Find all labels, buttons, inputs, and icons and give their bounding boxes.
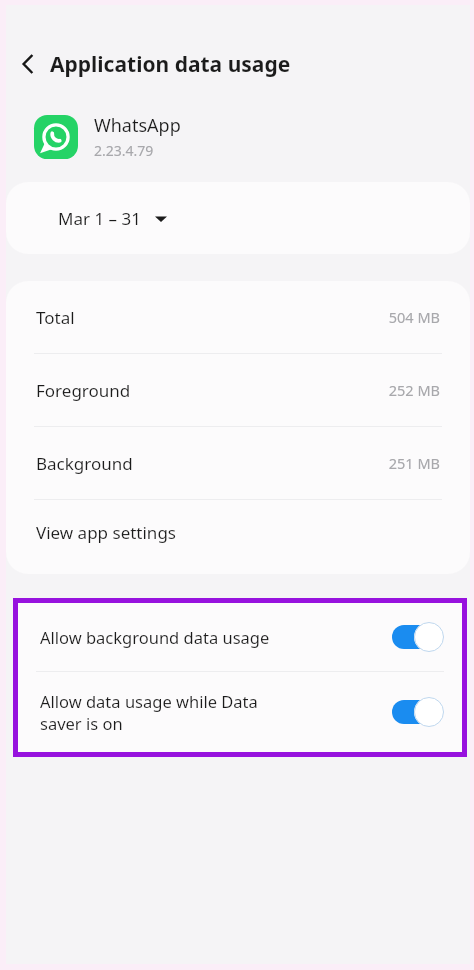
button[interactable]: Toggle on xyxy=(392,622,444,652)
button[interactable]: Foreground xyxy=(6,354,470,426)
staticText: WhatsApp xyxy=(94,113,181,138)
button[interactable]: Background xyxy=(6,427,470,499)
button[interactable]: Allow data usage while Data xyxy=(18,672,462,752)
button[interactable]: Total xyxy=(6,281,470,353)
staticText: Background xyxy=(36,452,133,475)
staticText: Mar 1 – 31 xyxy=(58,207,141,230)
staticText: Application data usage xyxy=(50,50,291,79)
button[interactable]: Allow background data usage xyxy=(18,603,462,671)
staticText: Total xyxy=(36,306,75,329)
staticText: View app settings xyxy=(36,521,176,544)
staticText: Allow background data usage xyxy=(40,626,270,648)
staticText: 251 MB xyxy=(388,453,440,473)
staticText: saver is on xyxy=(40,712,123,734)
staticText: Foreground xyxy=(36,379,131,402)
staticText: 2.23.4.79 xyxy=(94,141,154,160)
staticText: 504 MB xyxy=(388,307,440,327)
button[interactable]: View app settings xyxy=(6,500,470,564)
staticText: 252 MB xyxy=(388,380,440,400)
button[interactable]: Mar 1 – 31 xyxy=(6,182,470,254)
staticText: Allow data usage while Data xyxy=(40,690,258,712)
button[interactable]: Back xyxy=(6,42,50,86)
button[interactable]: Toggle on xyxy=(392,697,444,727)
